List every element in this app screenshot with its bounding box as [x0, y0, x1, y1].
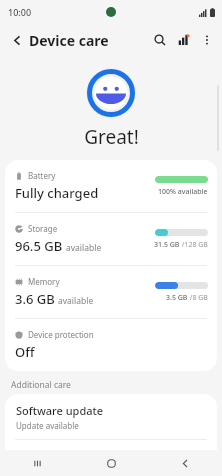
staticText: Memory	[28, 276, 60, 287]
button[interactable]: Statistics	[172, 28, 196, 52]
button[interactable]: Diagnostics	[5, 440, 217, 476]
button[interactable]: Device protection	[5, 319, 217, 371]
staticText: Great!	[84, 124, 139, 150]
staticText: 3.5 GB	[166, 293, 188, 303]
staticText: Diagnostics	[16, 448, 78, 463]
button[interactable]: Back	[148, 450, 222, 476]
button[interactable]: Memory	[5, 266, 217, 318]
staticText: 10:00	[8, 6, 32, 18]
button[interactable]: Home	[74, 450, 148, 476]
staticText: 3.6 GB	[15, 290, 55, 308]
staticText: 96.5 GB	[15, 237, 63, 255]
staticText: Storage	[28, 223, 58, 234]
staticText: Device care	[29, 31, 109, 50]
button[interactable]: Software update	[5, 394, 217, 439]
staticText: /8 GB	[188, 293, 208, 303]
staticText: 31.5 GB	[154, 240, 180, 250]
button[interactable]: Search	[148, 28, 172, 52]
staticText: Additional care	[11, 379, 71, 391]
staticText: Update available	[16, 420, 79, 431]
staticText: available	[58, 295, 94, 307]
staticText: Battery	[28, 170, 56, 181]
staticText: Software update	[16, 403, 104, 418]
staticText: Test your hardware	[16, 465, 89, 466]
staticText: /128 GB	[180, 240, 208, 250]
button[interactable]: Battery	[5, 160, 217, 212]
staticText: Device protection	[28, 329, 94, 340]
staticText: Off	[15, 343, 35, 361]
button[interactable]: More options	[196, 29, 218, 51]
staticText: Fully charged	[15, 184, 99, 202]
button[interactable]: Back	[6, 29, 28, 51]
button[interactable]: Recents	[0, 450, 74, 476]
staticText: 100% available	[158, 187, 208, 197]
staticText: available	[66, 242, 102, 254]
button[interactable]: Storage	[5, 213, 217, 265]
